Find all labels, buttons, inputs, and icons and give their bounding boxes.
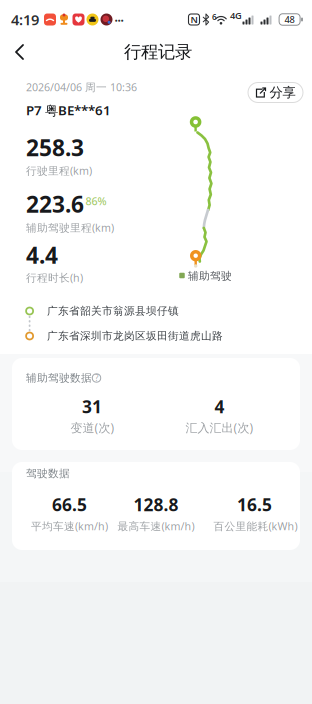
staticText: 最高车速(km/h) xyxy=(117,519,194,533)
staticText: 2026/04/06 周一 10:36 xyxy=(26,80,137,94)
staticText: 辅助驾驶数据 xyxy=(26,371,92,384)
staticText: 31 xyxy=(82,395,102,418)
staticText: 广东省深圳市龙岗区坂田街道虎山路 xyxy=(47,329,223,342)
staticText: 行驶里程(km) xyxy=(26,163,92,178)
staticText: 4:19 xyxy=(11,10,39,29)
staticText: 4.4 xyxy=(26,240,58,270)
staticText: 86% xyxy=(85,194,106,208)
staticText: 6 xyxy=(212,12,217,22)
staticText: 辅助驾驶里程(km) xyxy=(26,220,114,235)
staticText: ··· xyxy=(114,12,123,28)
staticText: 16.5 xyxy=(237,493,272,516)
staticText: N xyxy=(190,13,197,26)
staticText: 4 xyxy=(214,395,224,418)
staticText: 128.8 xyxy=(133,493,178,516)
staticText: 258.3 xyxy=(26,132,84,162)
staticText: 4G xyxy=(230,9,242,22)
staticText: 行程记录 xyxy=(124,41,192,63)
button[interactable]: 辅助驾驶数据说明 xyxy=(91,373,101,383)
staticText: 66.5 xyxy=(52,493,87,516)
staticText: 汇入汇出(次) xyxy=(185,419,253,435)
staticText: 辅助驾驶 xyxy=(188,269,232,282)
button[interactable]: 分享 xyxy=(248,82,303,102)
staticText: 223.6 xyxy=(26,189,84,219)
staticText: 48 xyxy=(285,13,295,26)
staticText: P7 粤BE***61 xyxy=(26,101,111,119)
staticText: ? xyxy=(95,373,98,383)
staticText: 百公里能耗(kWh) xyxy=(213,519,297,533)
staticText: 广东省韶关市翁源县坝仔镇 xyxy=(47,304,179,317)
staticText: 变道(次) xyxy=(70,419,114,435)
button[interactable]: Back xyxy=(11,41,33,63)
staticText: 平均车速(km/h) xyxy=(31,519,108,533)
staticText: 驾驶数据 xyxy=(26,467,70,480)
staticText: 行程时长(h) xyxy=(26,270,83,285)
staticText: 分享 xyxy=(269,84,295,101)
